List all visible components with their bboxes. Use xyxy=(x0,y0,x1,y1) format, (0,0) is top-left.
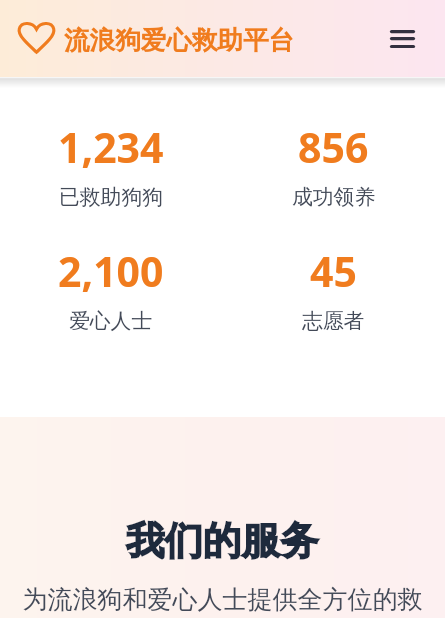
staticText: 856 xyxy=(298,119,369,175)
staticText: 为流浪狗和爱心人士提供全方位的救助服务 xyxy=(20,584,425,618)
staticText: 成功领养 xyxy=(292,184,376,210)
staticText: 爱心人士 xyxy=(69,308,153,334)
staticText: 流浪狗爱心救助平台 xyxy=(64,24,295,56)
staticText: 2,100 xyxy=(58,243,164,299)
staticText: 45 xyxy=(310,243,357,299)
staticText: 1,234 xyxy=(58,119,164,175)
button[interactable]: Menu xyxy=(382,19,422,59)
staticText: 志愿者 xyxy=(302,308,365,334)
staticText: 我们的服务 xyxy=(126,517,319,566)
staticText: 已救助狗狗 xyxy=(59,184,163,210)
button[interactable]: 流浪狗爱心救助平台 xyxy=(16,21,295,57)
